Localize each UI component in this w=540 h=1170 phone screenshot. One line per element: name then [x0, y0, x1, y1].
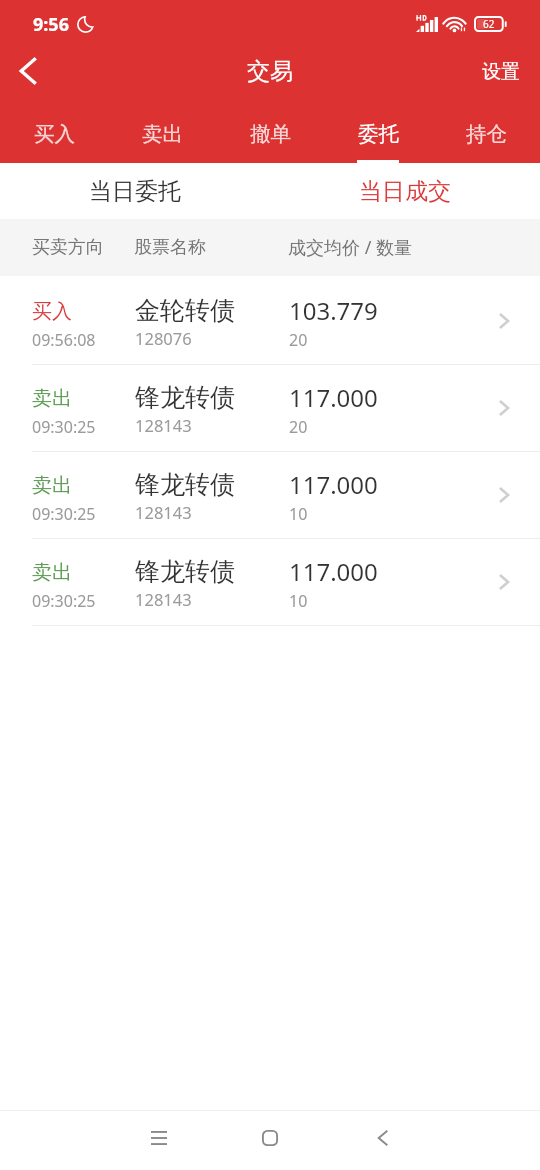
staticText: 买入 — [34, 121, 75, 147]
button[interactable]: 卖出 — [0, 365, 540, 451]
staticText: 当日成交 — [359, 177, 451, 206]
button[interactable]: 当日成交 — [270, 163, 540, 219]
staticText: 20 — [289, 416, 308, 438]
staticText: 设置 — [482, 60, 520, 84]
button[interactable]: Home — [246, 1114, 294, 1162]
staticText: 卖出 — [142, 121, 183, 147]
staticText: 委托 — [358, 121, 399, 147]
staticText: 买入 — [32, 299, 72, 324]
staticText: 128143 — [135, 414, 192, 436]
staticText: 10 — [289, 590, 308, 612]
button[interactable]: Back — [0, 48, 52, 95]
staticText: 买卖方向 — [32, 236, 104, 259]
staticText: 卖出 — [32, 386, 72, 411]
staticText: 股票名称 — [134, 236, 206, 259]
staticText: 117.000 — [289, 468, 378, 501]
staticText: 金轮转债 — [135, 295, 235, 326]
staticText: 锋龙转债 — [135, 469, 235, 500]
button[interactable]: 委托 — [324, 95, 432, 163]
staticText: 卖出 — [32, 473, 72, 498]
staticText: 交易 — [247, 57, 293, 86]
staticText: 锋龙转债 — [135, 382, 235, 413]
button[interactable]: 卖出 — [0, 539, 540, 625]
staticText: 撤单 — [250, 121, 291, 147]
staticText: 锋龙转债 — [135, 556, 235, 587]
button[interactable]: 撤单 — [216, 95, 324, 163]
button[interactable]: 买入 — [0, 95, 108, 163]
button[interactable]: 卖出 — [108, 95, 216, 163]
staticText: 128143 — [135, 588, 192, 610]
staticText: 20 — [289, 329, 308, 351]
button[interactable]: 买入 — [0, 278, 540, 364]
button[interactable]: Recent apps — [135, 1114, 183, 1162]
staticText: 128076 — [135, 327, 192, 349]
staticText: 09:30:25 — [32, 503, 96, 525]
staticText: 117.000 — [289, 381, 378, 414]
staticText: 卖出 — [32, 560, 72, 585]
button[interactable]: 设置 — [468, 48, 540, 95]
button[interactable]: 卖出 — [0, 452, 540, 538]
staticText: 持仓 — [466, 121, 507, 147]
button[interactable]: 持仓 — [432, 95, 540, 163]
staticText: 9:56 — [33, 12, 69, 37]
staticText: 09:56:08 — [32, 329, 96, 351]
button[interactable]: 当日委托 — [0, 163, 270, 219]
staticText: 09:30:25 — [32, 416, 96, 438]
staticText: 10 — [289, 503, 308, 525]
staticText: 103.779 — [289, 294, 378, 327]
staticText: 128143 — [135, 501, 192, 523]
staticText: 62 — [483, 17, 495, 31]
staticText: 117.000 — [289, 555, 378, 588]
staticText: 09:30:25 — [32, 590, 96, 612]
button[interactable]: Back — [359, 1114, 407, 1162]
staticText: 当日委托 — [89, 177, 181, 206]
staticText: 成交均价 / 数量 — [288, 235, 413, 260]
